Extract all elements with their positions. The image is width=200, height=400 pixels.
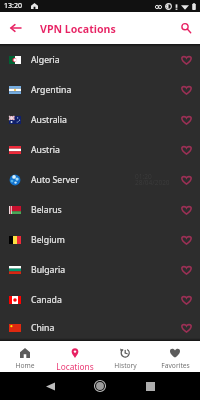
button[interactable]: Search: [175, 17, 197, 39]
button[interactable]: Australia: [0, 105, 200, 135]
staticText: Belgium: [31, 234, 65, 246]
staticText: Favorites: [161, 361, 190, 370]
button[interactable]: Favorite: [175, 169, 197, 191]
staticText: History: [114, 361, 137, 370]
button[interactable]: Argentina: [0, 75, 200, 105]
button[interactable]: Home: [89, 375, 111, 397]
staticText: 13:20: [4, 1, 22, 11]
button[interactable]: Favorite: [175, 289, 197, 311]
button[interactable]: Austria: [0, 135, 200, 165]
staticText: Auto Server: [31, 174, 79, 186]
button[interactable]: Back: [3, 16, 27, 40]
button[interactable]: Belgium: [0, 225, 200, 255]
button[interactable]: Home: [0, 341, 50, 372]
button[interactable]: Favorite: [175, 79, 197, 101]
button[interactable]: Favorite: [175, 49, 197, 71]
button[interactable]: Canada: [0, 285, 200, 315]
button[interactable]: Favorite: [175, 259, 197, 281]
button[interactable]: Algeria: [0, 45, 200, 75]
staticText: Home: [15, 361, 35, 370]
button[interactable]: Belarus: [0, 195, 200, 225]
staticText: Belarus: [31, 204, 62, 216]
button[interactable]: Favorite: [175, 199, 197, 221]
staticText: Australia: [31, 114, 67, 126]
staticText: Algeria: [31, 54, 60, 66]
button[interactable]: Auto Server: [0, 165, 200, 195]
button[interactable]: Back: [39, 375, 61, 397]
button[interactable]: Favorite: [175, 229, 197, 251]
button[interactable]: Favorite: [175, 139, 197, 161]
button[interactable]: Favorite: [175, 317, 197, 339]
button[interactable]: Favorites: [150, 341, 200, 372]
button[interactable]: Bulgaria: [0, 255, 200, 285]
staticText: Locations: [56, 361, 94, 372]
staticText: Austria: [31, 144, 60, 156]
staticText: Bulgaria: [31, 264, 66, 276]
staticText: Argentina: [31, 84, 72, 96]
staticText: Canada: [31, 294, 62, 306]
button[interactable]: Recent apps: [139, 375, 161, 397]
button[interactable]: Favorite: [175, 109, 197, 131]
button[interactable]: History: [100, 341, 150, 372]
staticText: VPN Locations: [40, 22, 116, 36]
button[interactable]: Locations: [50, 341, 100, 372]
button[interactable]: China: [0, 315, 200, 341]
staticText: China: [31, 322, 55, 334]
